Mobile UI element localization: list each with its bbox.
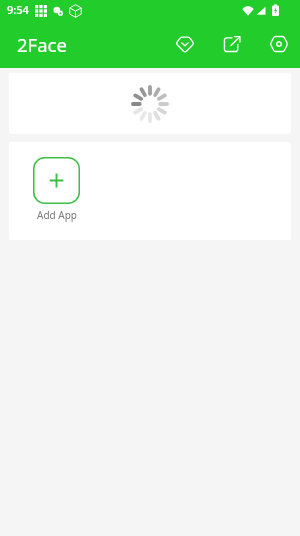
staticText: 9:54 <box>7 2 29 17</box>
button[interactable]: Settings <box>264 29 294 59</box>
staticText: Add App <box>37 208 77 222</box>
button[interactable]: Updates <box>170 29 200 59</box>
button[interactable]: Add App <box>27 157 86 222</box>
staticText: 2Face <box>17 32 67 57</box>
button[interactable]: Open in new <box>217 29 247 59</box>
